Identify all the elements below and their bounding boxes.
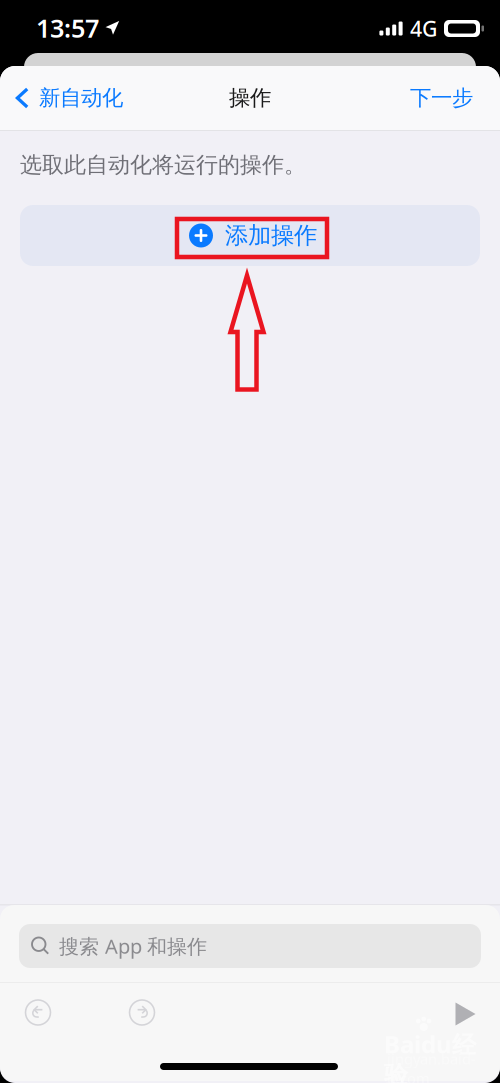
button[interactable]: 新自动化 xyxy=(15,81,185,115)
button[interactable]: 下一步 xyxy=(318,81,473,115)
button[interactable]: 添加操作 xyxy=(20,205,480,266)
staticText: 下一步 xyxy=(410,85,473,111)
button[interactable]: Run xyxy=(455,1002,476,1026)
staticText: 13:57 xyxy=(36,11,99,45)
staticText: 4G xyxy=(410,14,438,43)
button[interactable]: Undo xyxy=(25,1000,50,1025)
staticText: 添加操作 xyxy=(225,221,317,250)
button[interactable]: Redo xyxy=(129,1000,154,1025)
button[interactable]: 搜索 App 和操作 xyxy=(19,924,481,968)
staticText: 操作 xyxy=(229,85,271,111)
staticText: 选取此自动化将运行的操作。 xyxy=(20,151,306,179)
staticText: 新自动化 xyxy=(39,85,123,111)
staticText: 搜索 App 和操作 xyxy=(59,933,207,959)
